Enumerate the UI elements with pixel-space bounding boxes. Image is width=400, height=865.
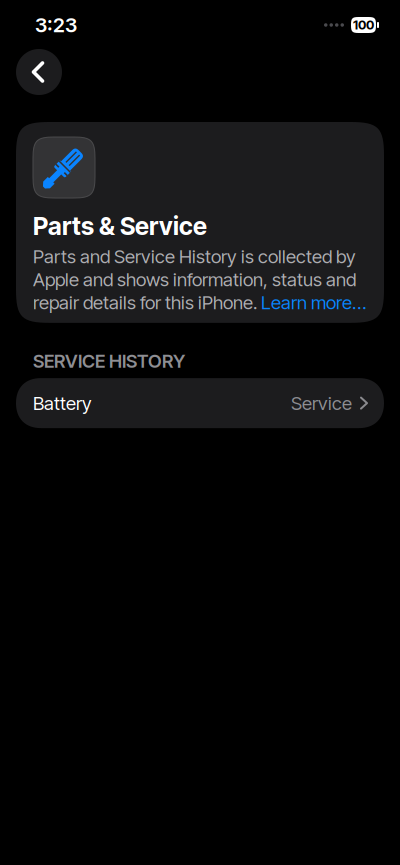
staticText: Learn more… (261, 291, 366, 314)
staticText: Apple and shows information, status and (33, 268, 356, 291)
staticText: 3:23 (35, 13, 77, 37)
staticText: repair details for this iPhone. (33, 291, 261, 314)
staticText: Battery (33, 392, 92, 414)
staticText: Service (291, 392, 352, 414)
staticText: 100 (353, 17, 374, 33)
button[interactable]: Battery (16, 378, 384, 428)
staticText: Parts and Service History is collected b… (33, 245, 356, 268)
button[interactable]: Back (16, 49, 62, 95)
button[interactable]: Learn more… (261, 291, 366, 314)
staticText: SERVICE HISTORY (33, 350, 185, 372)
staticText: Parts & Service (33, 211, 207, 241)
